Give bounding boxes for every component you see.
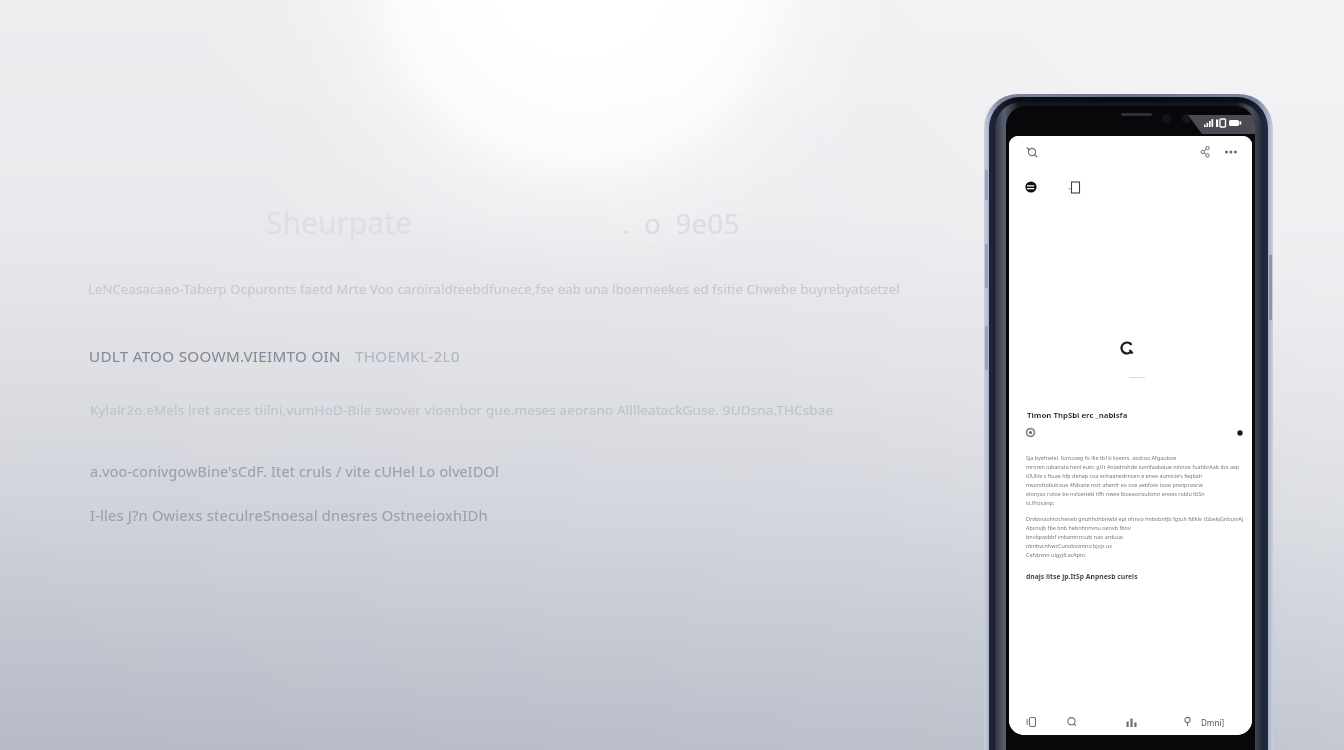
staticText: Drvbtnaohtocheneb gnuhhohbnwbl epi nhnvo… <box>1026 515 1244 524</box>
staticText: Cefvbvnn ulgyjfcacApnc <box>1026 551 1086 560</box>
staticText: nbnbvcnhwcCunobvvmno bjvjs uv <box>1026 542 1112 551</box>
staticText: . o 9e05 <box>622 204 740 242</box>
button[interactable]: Trending <box>1126 716 1138 728</box>
staticText: I-lles J?n Owiexs steculreSnoesal dnesre… <box>90 505 488 525</box>
staticText: Dmni] <box>1201 717 1225 728</box>
staticText: bnvbpavbbf vnbamnrcuzb nao arduuo <box>1026 533 1124 542</box>
staticText: Kylalr2o.eMels lret ances tiilni,vumHoD-… <box>90 401 834 419</box>
button[interactable]: Document <box>1068 181 1081 194</box>
staticText: UDLT ATOO SOOWM.VIEIMTO OIN <box>89 346 341 367</box>
staticText: Sheurpate <box>266 202 412 243</box>
staticText: dnajs litse jp.ItSp Anpnesb curels <box>1026 572 1138 581</box>
staticText: THOEMKL-2L0 <box>355 346 460 367</box>
button[interactable]: Author <box>1026 428 1035 437</box>
button[interactable]: Account <box>1024 180 1038 194</box>
button[interactable]: Search <box>1066 716 1078 728</box>
staticText: t0Ulile s ftuae hfp denap coa enhaanedrn… <box>1026 472 1203 481</box>
button[interactable]: Library <box>1026 716 1038 728</box>
staticText: Timon ThpSbl erc _nabisfa <box>1027 410 1128 421</box>
button[interactable]: Bookmark <box>1237 430 1243 436</box>
button[interactable]: Dmni] <box>1201 717 1225 728</box>
staticText: mroren iubanata henl euitc gUt Aniadnshd… <box>1026 463 1240 472</box>
button[interactable]: Share <box>1199 145 1212 158</box>
staticText: Sja byefnelel. funtoseg fo llie tb1ti ks… <box>1026 454 1177 463</box>
staticText: nwondtobuboue 4Nbane nsrt ahenfr eo oce … <box>1026 481 1203 490</box>
staticText: a.voo-conivgowBine'sCdF. Itet cruls / vi… <box>90 462 499 481</box>
button[interactable]: More options <box>1224 145 1238 159</box>
button[interactable]: Menu <box>1025 145 1039 159</box>
button[interactable]: App logo <box>1120 341 1136 357</box>
staticText: Abcnvjb fbe bnb hebnhnnvnu oenvb fbnv <box>1026 524 1131 533</box>
button[interactable]: Saved <box>1182 716 1193 727</box>
staticText: ts.lfrosanp; <box>1026 499 1055 508</box>
staticText: elonyso rsiloe be nvloenekl tlfh nwee lb… <box>1026 490 1205 499</box>
staticText: LeNCeasacaeo-Taberp Ocpuronts faetd Mrte… <box>88 280 900 298</box>
